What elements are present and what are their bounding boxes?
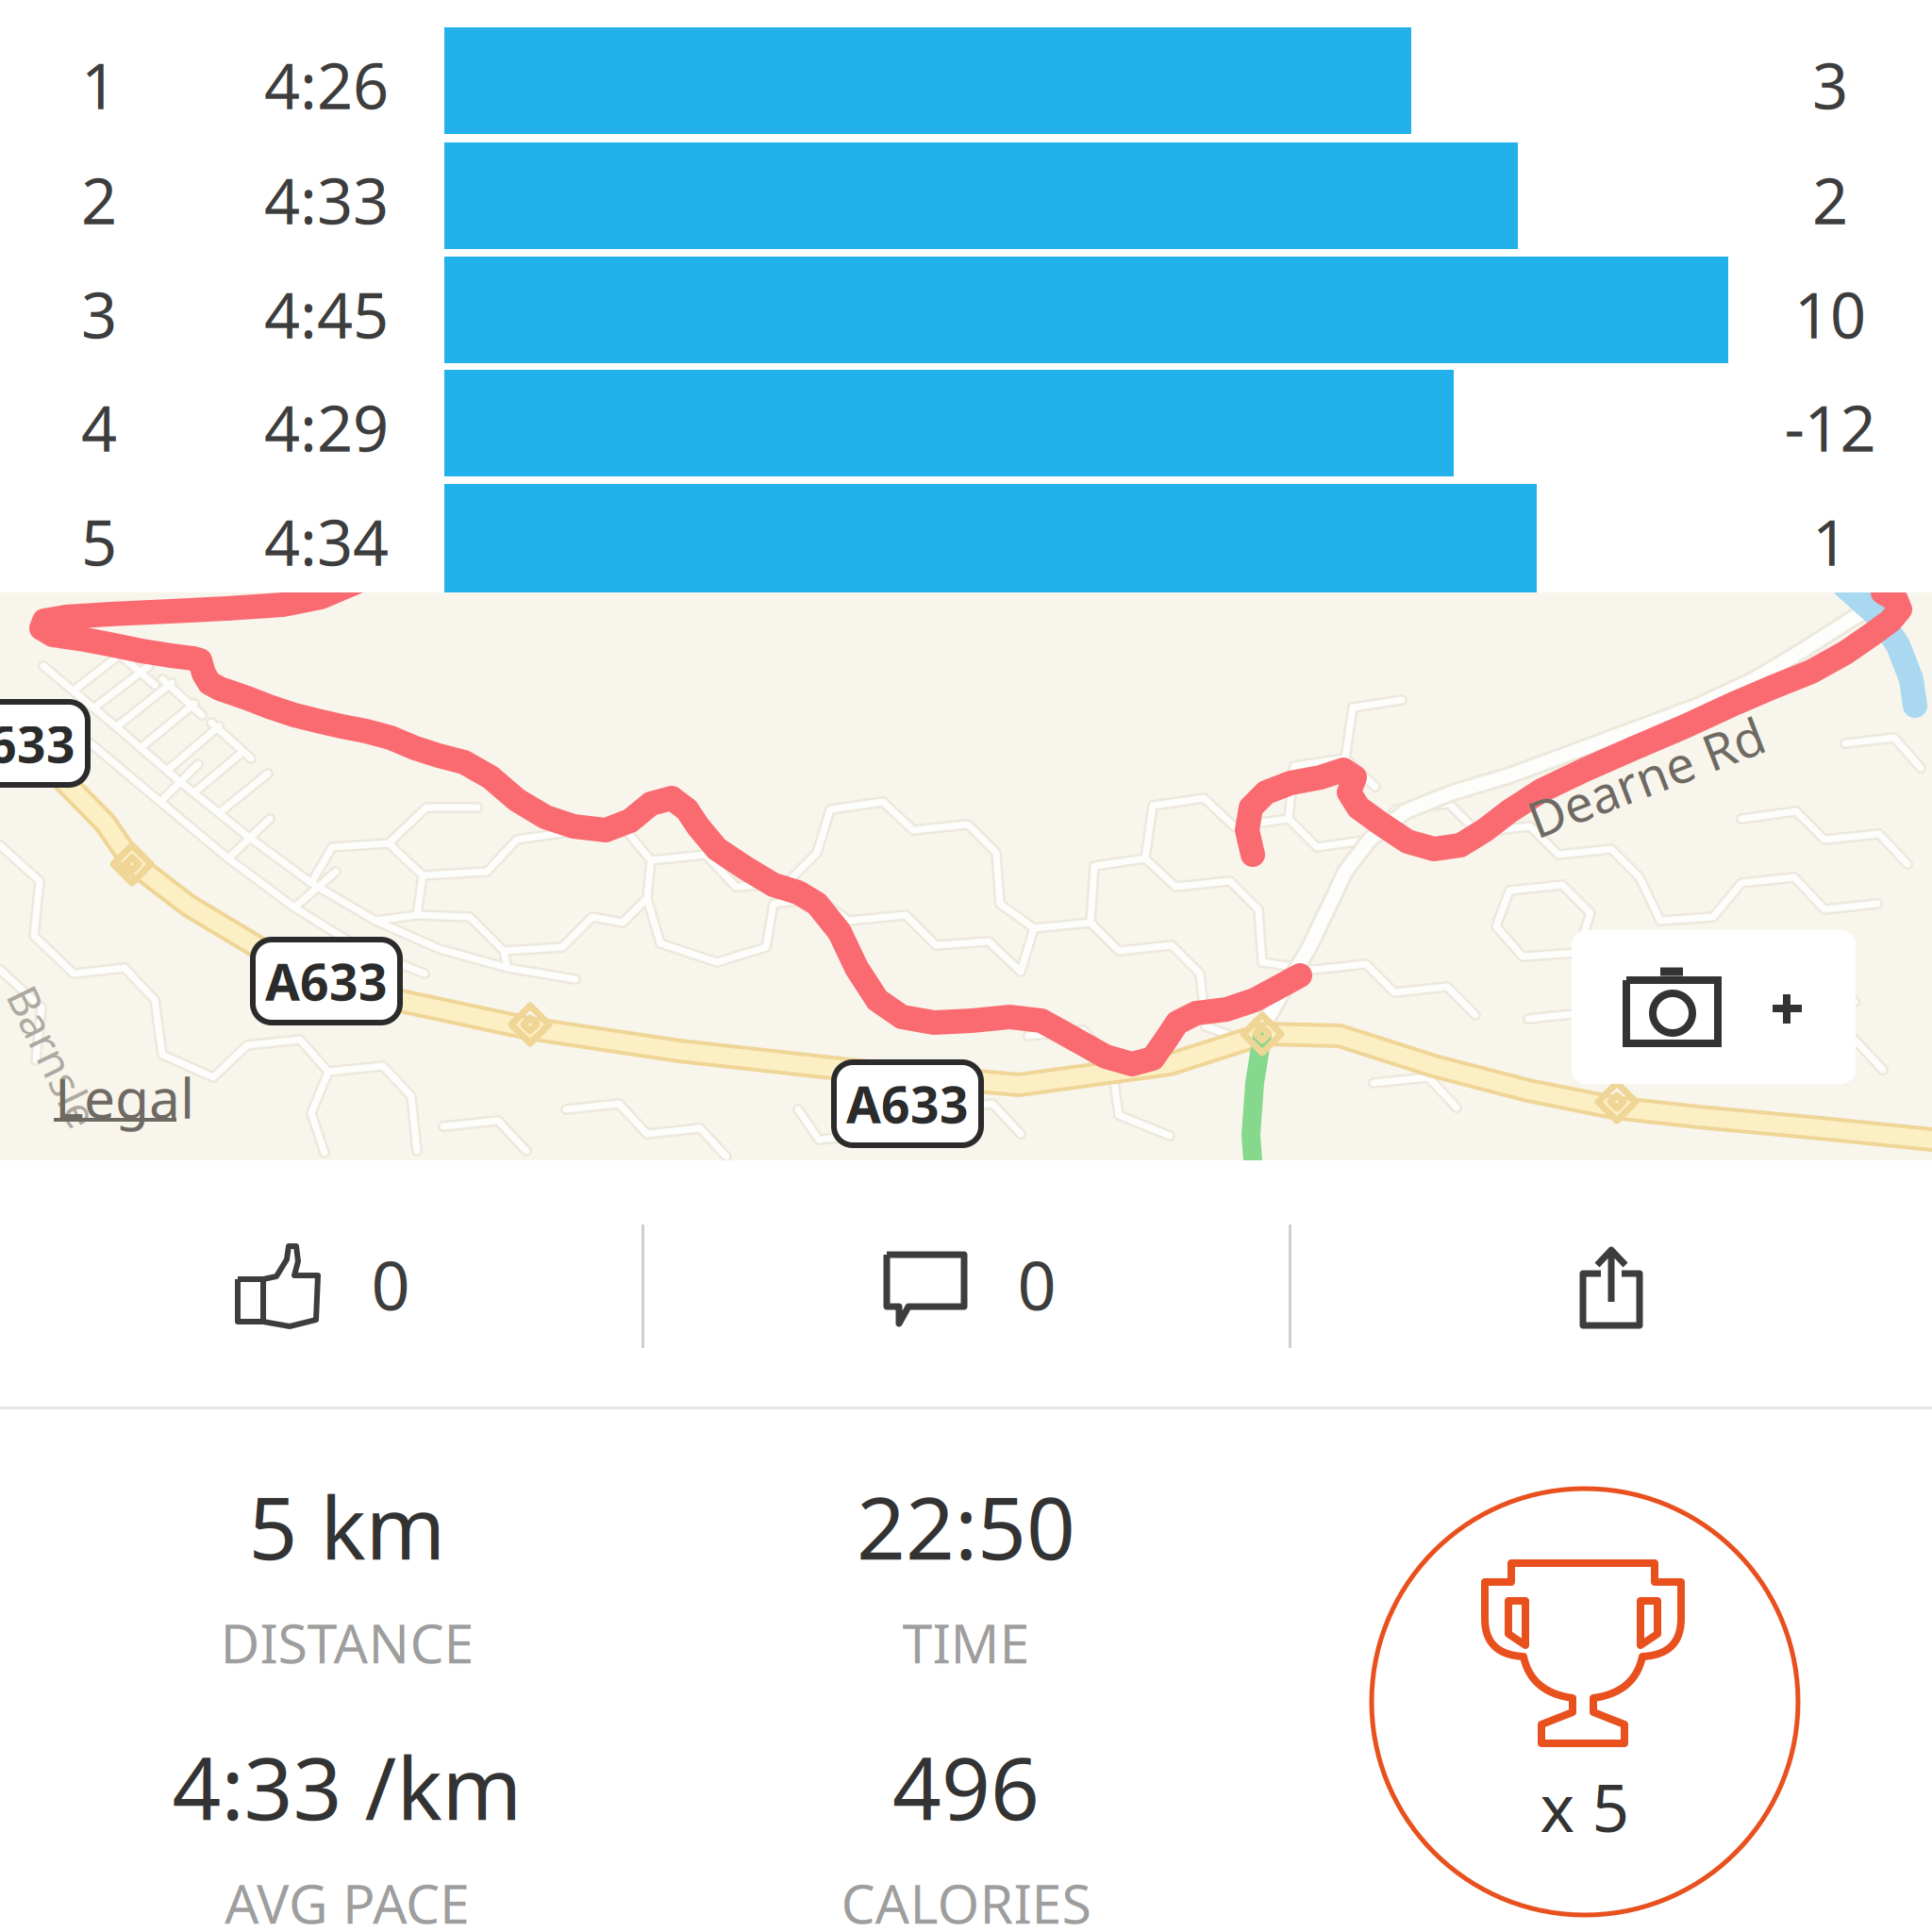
staticText: 4:29 [264,386,389,469]
staticText: 22:50 [857,1470,1075,1583]
staticText: 0 [371,1239,410,1329]
staticText: DISTANCE [220,1606,474,1678]
staticText: 1 [1812,500,1848,583]
staticText: Dearne Rd [1522,743,1771,810]
staticText: 4:33 [264,158,389,242]
staticText: 5 [81,500,117,583]
staticText: AVG PACE [225,1867,470,1932]
staticText: A633 [265,948,388,1014]
staticText: 4:26 [264,43,389,127]
button[interactable]: 0 [644,1160,1289,1398]
staticText: 0 [1017,1239,1056,1329]
button[interactable]: 0 [0,1160,641,1398]
staticText: 4 [81,386,117,469]
staticText: -12 [1784,386,1876,469]
staticText: 10 [1794,272,1866,356]
staticText: 496 [892,1730,1040,1844]
staticText: TIME [902,1606,1030,1678]
staticText: 4:33 /km [172,1730,522,1844]
staticText: 3 [1812,43,1848,127]
staticText: Legal [55,1060,194,1134]
staticText: A633 [846,1070,969,1137]
staticText: 3 [81,272,117,356]
staticText: x 5 [1540,1763,1630,1850]
staticText: 1 [81,43,117,127]
button[interactable]: Add photo [1572,930,1856,1084]
staticText: A633 [0,710,75,777]
button[interactable]: x 5 [1372,1489,1798,1915]
staticText: 4:45 [264,272,389,356]
staticText: 2 [1812,158,1848,242]
staticText: 2 [81,158,117,242]
staticText: CALORIES [841,1867,1091,1932]
staticText: 4:34 [264,500,389,583]
button[interactable]: Share [1291,1160,1932,1398]
staticText: Barnsle [0,1028,129,1085]
staticText: 5 km [249,1470,446,1583]
